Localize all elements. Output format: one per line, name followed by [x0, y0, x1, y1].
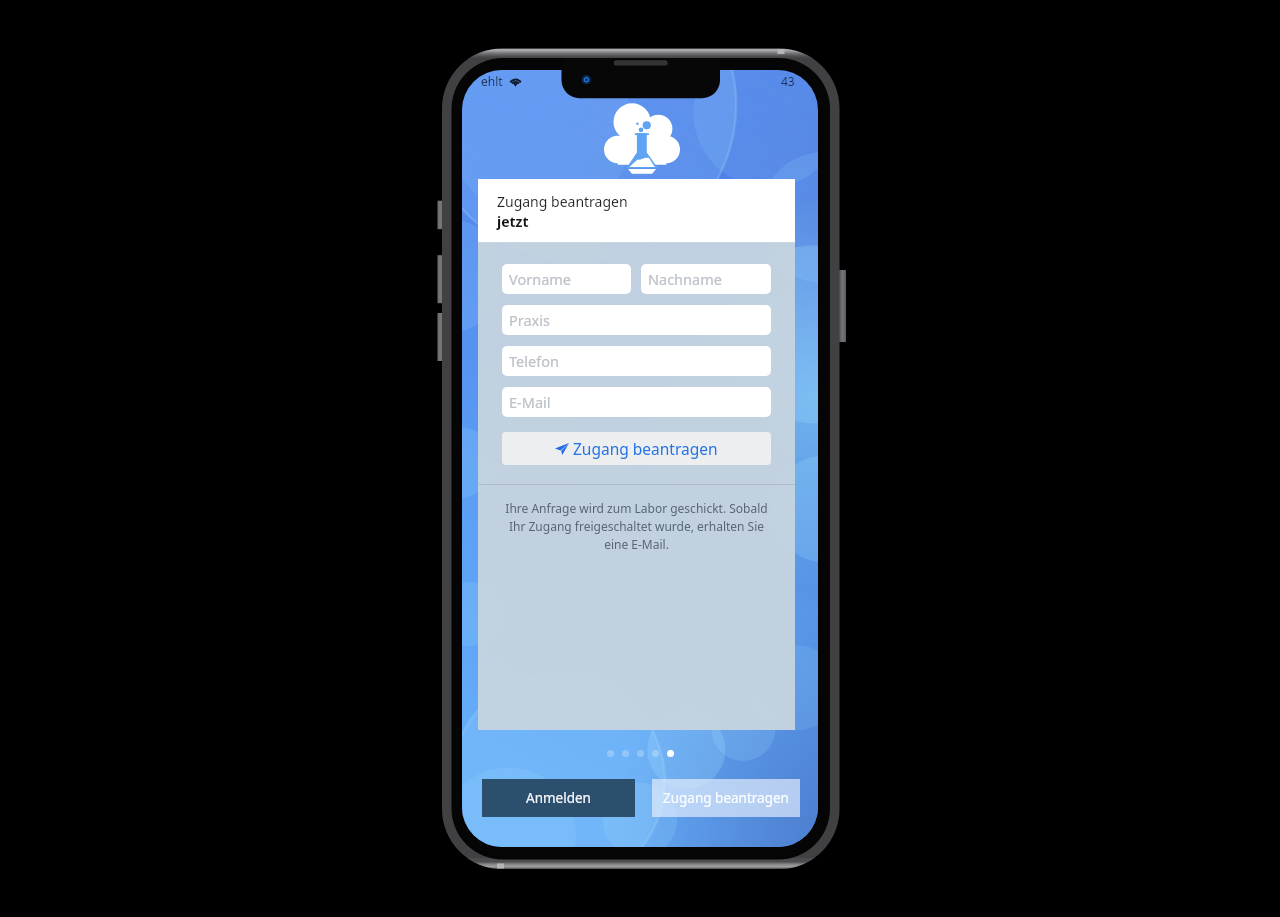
button[interactable] [637, 750, 644, 757]
button[interactable] [607, 750, 614, 757]
button[interactable]: E-Mail [502, 387, 771, 417]
staticText: Zugang beantragen [573, 438, 718, 459]
button[interactable]: Praxis [502, 305, 771, 335]
staticText: Ihre Anfrage wird zum Labor geschickt. S… [490, 500, 783, 552]
staticText: ehlt [481, 73, 503, 89]
button[interactable]: Nachname [641, 264, 771, 294]
staticText: jetzt [497, 212, 529, 231]
staticText: Zugang beantragen [663, 789, 789, 807]
button[interactable]: Anmelden [482, 779, 635, 817]
staticText: 43 [781, 73, 795, 89]
staticText: Praxis [509, 310, 550, 330]
staticText: E-Mail [509, 392, 551, 412]
button[interactable]: Telefon [502, 346, 771, 376]
button[interactable]: Vorname [502, 264, 631, 294]
button[interactable]: Zugang beantragen [502, 432, 771, 465]
staticText: Zugang beantragen [497, 192, 628, 211]
button[interactable] [667, 750, 674, 757]
button[interactable] [622, 750, 629, 757]
staticText: Nachname [648, 269, 722, 289]
staticText: Anmelden [526, 789, 591, 807]
staticText: Vorname [509, 269, 572, 289]
button[interactable]: Zugang beantragen [652, 779, 800, 817]
staticText: Telefon [509, 351, 559, 371]
button[interactable] [652, 750, 659, 757]
